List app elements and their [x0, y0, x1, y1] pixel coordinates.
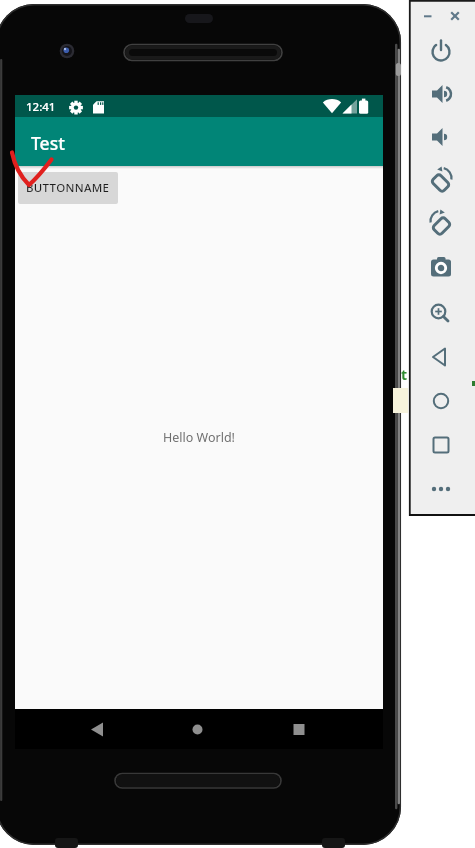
- button[interactable]: BUTTONNAME: [18, 172, 118, 204]
- button[interactable]: [421, 425, 461, 465]
- button[interactable]: [421, 469, 461, 509]
- button[interactable]: [445, 6, 466, 27]
- button[interactable]: [281, 713, 317, 746]
- button[interactable]: [79, 713, 115, 746]
- button[interactable]: [421, 247, 461, 287]
- button[interactable]: [417, 6, 438, 27]
- button[interactable]: [421, 337, 461, 377]
- staticText: 12:41: [26, 99, 56, 115]
- staticText: t: [401, 365, 408, 384]
- button[interactable]: [421, 31, 461, 71]
- button[interactable]: [179, 713, 215, 746]
- staticText: Hello World!: [163, 429, 235, 446]
- button[interactable]: [421, 381, 461, 421]
- staticText: Test: [31, 131, 65, 155]
- button[interactable]: [421, 117, 461, 157]
- button[interactable]: [421, 294, 461, 334]
- button[interactable]: [421, 161, 461, 201]
- staticText: BUTTONNAME: [26, 180, 110, 196]
- button[interactable]: [421, 74, 461, 114]
- button[interactable]: [421, 204, 461, 244]
